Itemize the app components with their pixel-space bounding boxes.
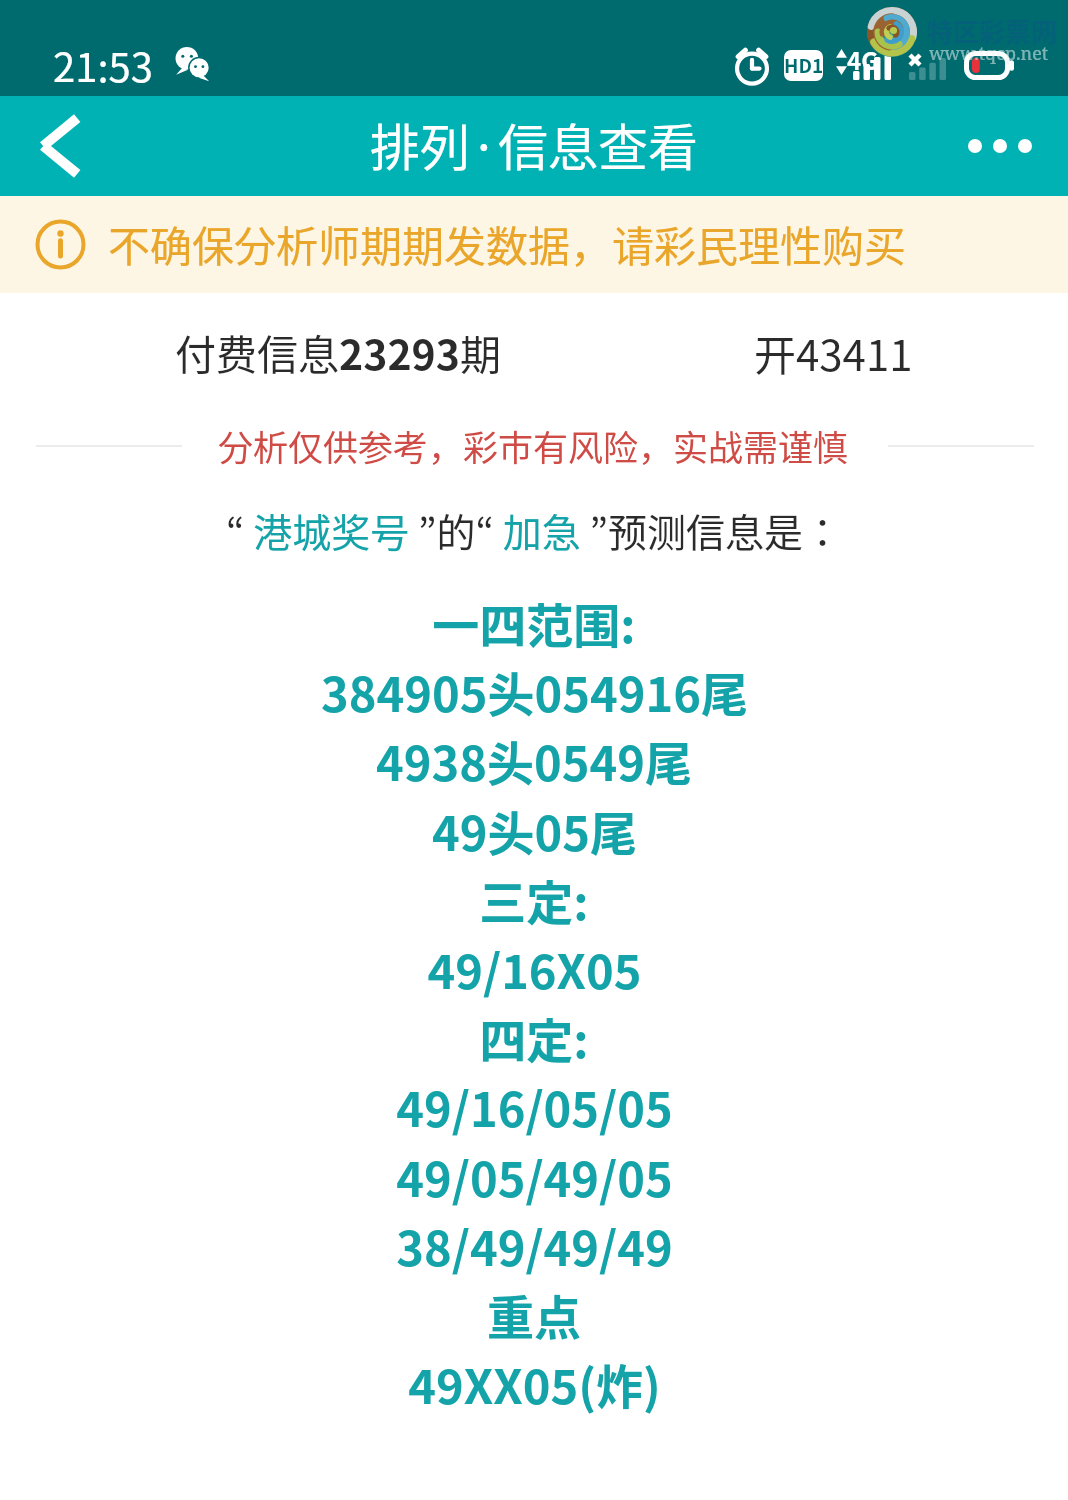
staticText: 排列·信息查看 bbox=[370, 108, 699, 180]
staticText: 三定: bbox=[479, 865, 589, 933]
staticText: 49/16/05/05 bbox=[396, 1072, 673, 1140]
button[interactable]: More options bbox=[928, 96, 1068, 196]
button[interactable]: Back bbox=[0, 96, 120, 196]
staticText: www.tqcp.net bbox=[929, 41, 1049, 66]
staticText: 49头05尾 bbox=[432, 796, 637, 864]
staticText: 重点 bbox=[487, 1280, 581, 1348]
staticText: 49/16X05 bbox=[427, 934, 642, 1002]
staticText: 49XX05(炸) bbox=[408, 1349, 661, 1417]
staticText: 分析仅供参考，彩市有风险，实战需谨慎 bbox=[218, 420, 849, 471]
staticText: 38/49/49/49 bbox=[396, 1211, 673, 1279]
staticText: 四定: bbox=[479, 1003, 589, 1071]
staticText: 不确保分析师期期发数据，请彩民理性购买 bbox=[108, 213, 907, 274]
staticText: 4938头0549尾 bbox=[376, 726, 692, 794]
staticText: HD1 bbox=[784, 51, 823, 79]
staticText: 49/05/49/05 bbox=[396, 1142, 673, 1210]
staticText: 一四范围: bbox=[432, 588, 636, 656]
staticText: “ 港城奖号 ”的“ 加急 ”预测信息是： bbox=[226, 502, 842, 558]
staticText: 特区彩票网 bbox=[927, 12, 1058, 50]
staticText: 付费信息23293期 bbox=[175, 322, 501, 381]
staticText: 384905头054916尾 bbox=[321, 657, 748, 725]
staticText: 21:53 bbox=[53, 36, 153, 94]
staticText: 开43411 bbox=[754, 322, 913, 383]
staticText: 4G bbox=[847, 42, 879, 77]
